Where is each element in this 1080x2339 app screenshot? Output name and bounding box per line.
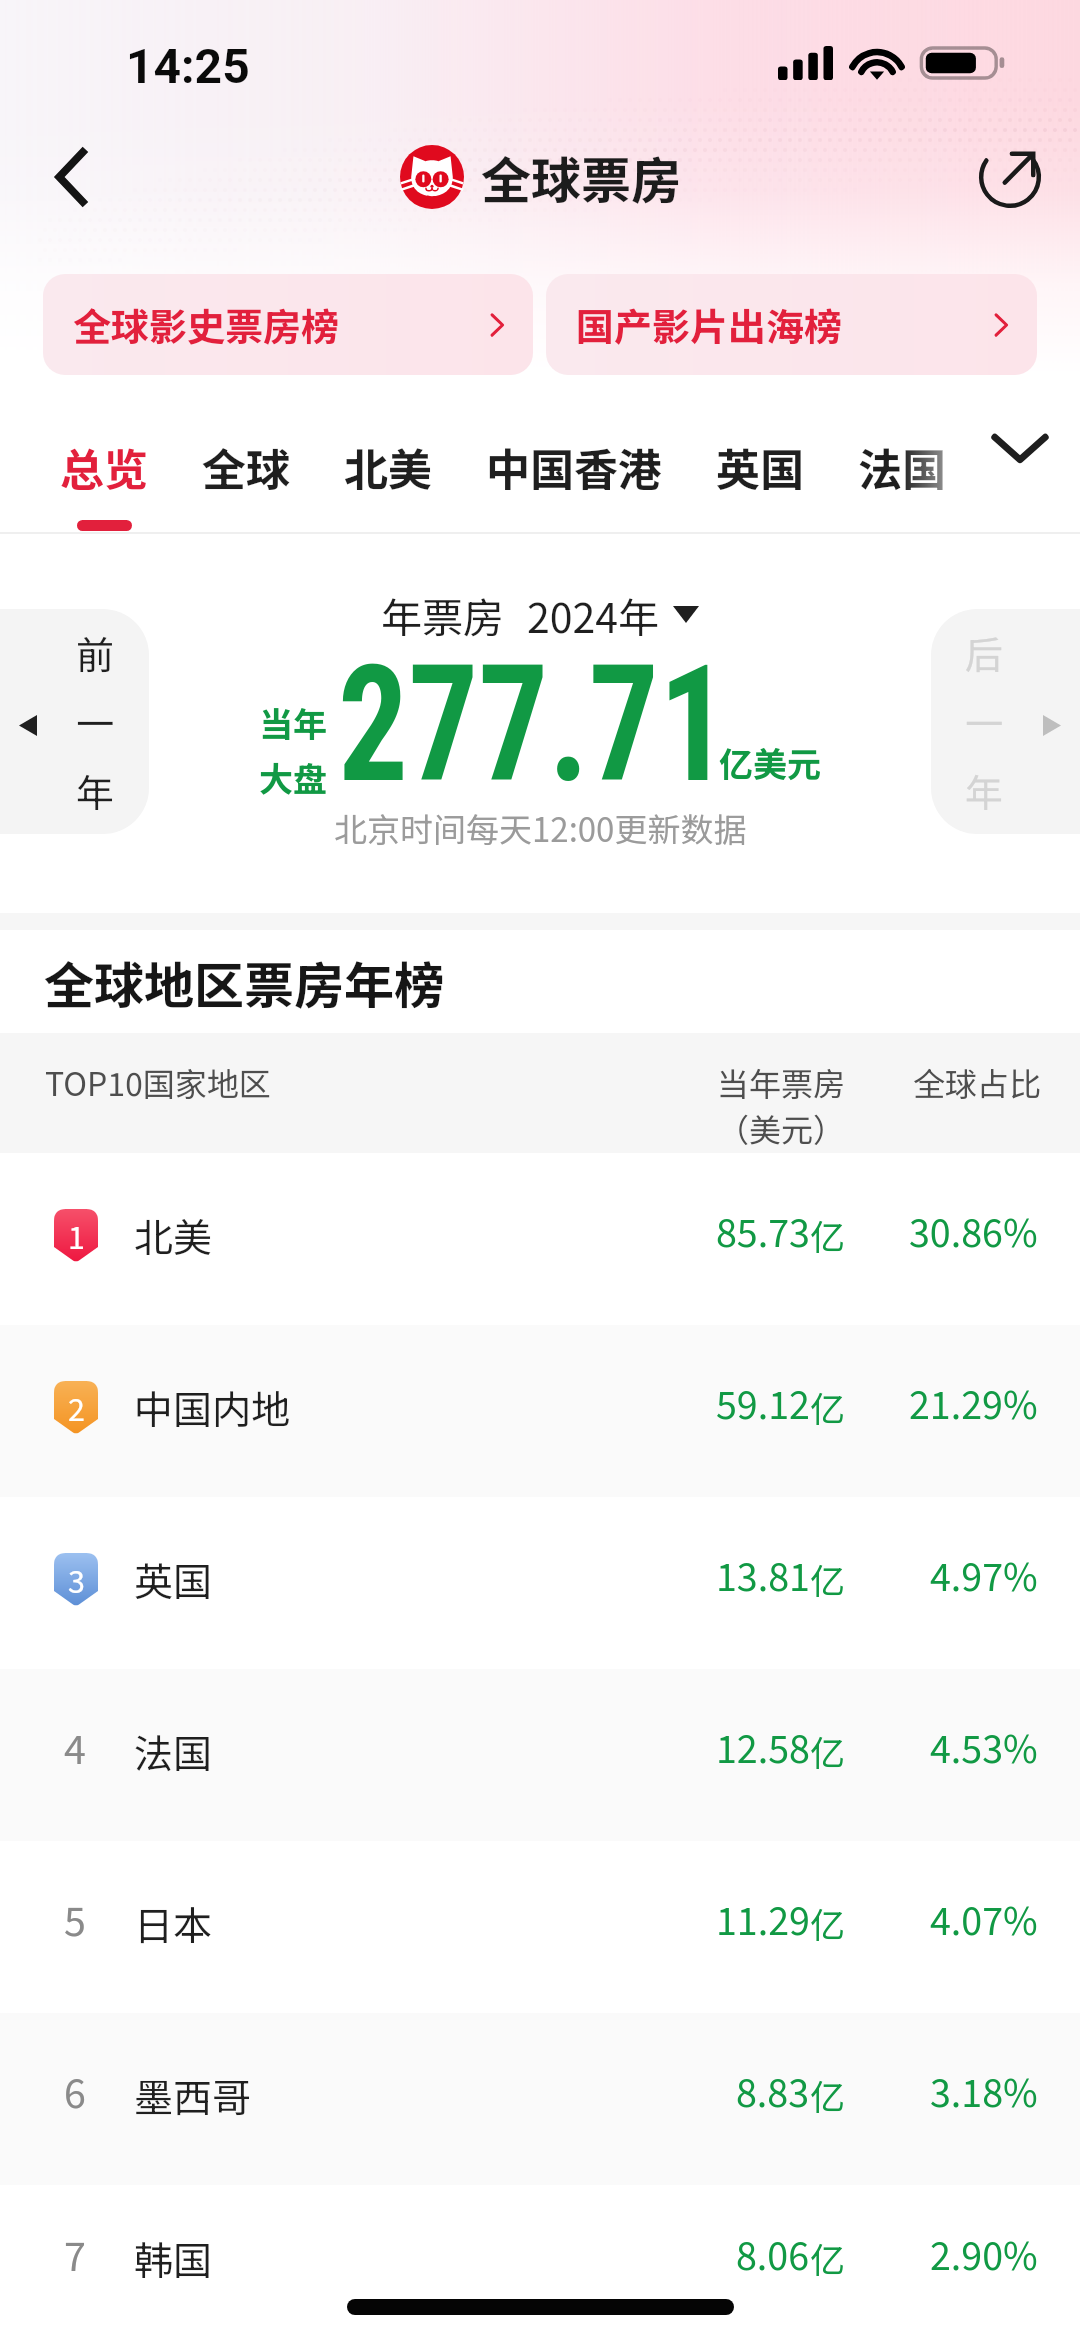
staticText: 英国 xyxy=(716,435,804,499)
staticText: 亿 xyxy=(810,2069,846,2120)
staticText: 一 xyxy=(76,694,115,749)
staticText: 30.86% xyxy=(909,1204,1038,1264)
staticText: 国产影片出海榜 xyxy=(576,297,843,352)
staticText: 亿 xyxy=(810,1209,846,1260)
staticText: 当年票房 xyxy=(717,1059,846,1105)
staticText: TOP10国家地区 xyxy=(45,1059,271,1105)
button[interactable]: 2 xyxy=(0,1325,1080,1497)
button[interactable]: 年票房 xyxy=(381,585,699,644)
button[interactable]: Share xyxy=(968,135,1052,219)
staticText: 总览 xyxy=(60,435,148,499)
staticText: 中国香港 xyxy=(486,435,662,499)
staticText: 21.29% xyxy=(909,1376,1038,1436)
staticText: 中国内地 xyxy=(134,1379,291,1435)
staticText: 5 xyxy=(64,1891,86,1954)
staticText: 6 xyxy=(64,2063,86,2126)
staticText: 亿 xyxy=(810,1725,846,1776)
button[interactable]: 4 xyxy=(0,1669,1080,1841)
button[interactable]: 国产影片出海榜 xyxy=(546,274,1037,375)
staticText: 2.90% xyxy=(930,2227,1038,2287)
staticText: 后 xyxy=(965,625,1004,680)
staticText: 7 xyxy=(64,2226,86,2289)
staticText: 4.97% xyxy=(930,1548,1038,1608)
button[interactable]: 全球 xyxy=(202,435,290,499)
button[interactable]: 中国香港 xyxy=(486,435,662,499)
staticText: 14:25 xyxy=(126,38,250,94)
staticText: 2024年 xyxy=(527,585,660,644)
staticText: 年 xyxy=(76,763,115,818)
staticText: 13.81 xyxy=(716,1548,810,1608)
staticText: 日本 xyxy=(134,1895,213,1951)
button[interactable]: 全球影史票房榜 xyxy=(43,274,533,375)
staticText: （美元） xyxy=(717,1105,846,1151)
staticText: 12.58 xyxy=(716,1720,810,1780)
button[interactable]: 北美 xyxy=(344,435,432,499)
staticText: 8.83 xyxy=(736,2064,810,2124)
staticText: 全球影史票房榜 xyxy=(73,297,340,352)
staticText: 全球 xyxy=(202,435,290,499)
staticText: 当年 xyxy=(259,698,327,747)
staticText: 3.18% xyxy=(930,2064,1038,2124)
staticText: 亿 xyxy=(810,2232,846,2283)
staticText: 法国 xyxy=(858,435,946,499)
staticText: 全球票房 xyxy=(481,141,681,213)
staticText: 韩国 xyxy=(134,2230,213,2286)
staticText: 北美 xyxy=(344,435,432,499)
staticText: 北京时间每天12:00更新数据 xyxy=(334,804,747,852)
button[interactable]: 总览 xyxy=(60,435,148,531)
button[interactable]: 英国 xyxy=(716,435,804,499)
staticText: 4 xyxy=(64,1719,86,1782)
staticText: 59.12 xyxy=(716,1376,810,1436)
button[interactable]: 5 xyxy=(0,1841,1080,2013)
staticText: 全球占比 xyxy=(913,1059,1042,1105)
staticText: 年 xyxy=(965,763,1004,818)
button[interactable]: 7 xyxy=(0,2185,1080,2339)
staticText: 亿 xyxy=(810,1553,846,1604)
staticText: 年票房 xyxy=(381,585,504,644)
staticText: 11.29 xyxy=(716,1892,810,1952)
staticText: 一 xyxy=(965,694,1004,749)
staticText: 前 xyxy=(76,625,115,680)
button[interactable]: 3 xyxy=(0,1497,1080,1669)
staticText: 墨西哥 xyxy=(134,2067,252,2123)
button[interactable]: Expand tabs xyxy=(978,406,1062,490)
staticText: 2 xyxy=(68,1386,85,1434)
staticText: 亿 xyxy=(810,1897,846,1948)
button[interactable]: Back xyxy=(30,135,114,219)
staticText: 85.73 xyxy=(716,1204,810,1264)
staticText: 英国 xyxy=(134,1551,213,1607)
staticText: 1 xyxy=(68,1214,85,1262)
staticText: 全球地区票房年榜 xyxy=(44,946,444,1018)
staticText: 亿 xyxy=(810,1381,846,1432)
staticText: 4.07% xyxy=(930,1892,1038,1952)
staticText: 亿美元 xyxy=(719,738,821,787)
button[interactable]: Previous year xyxy=(0,609,149,834)
button[interactable]: 6 xyxy=(0,2013,1080,2185)
staticText: 3 xyxy=(68,1558,85,1606)
button[interactable]: 1 xyxy=(0,1153,1080,1325)
staticText: 8.06 xyxy=(736,2227,810,2287)
button[interactable]: 法国 xyxy=(858,435,946,499)
staticText: 4.53% xyxy=(930,1720,1038,1780)
staticText: 法国 xyxy=(134,1723,213,1779)
staticText: 北美 xyxy=(134,1207,213,1263)
staticText: 大盘 xyxy=(259,753,327,802)
staticText: 277.71 xyxy=(338,631,729,820)
button[interactable]: Next year xyxy=(931,609,1080,834)
